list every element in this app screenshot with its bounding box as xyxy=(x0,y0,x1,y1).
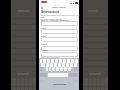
button[interactable] xyxy=(64,67,67,71)
button[interactable] xyxy=(46,63,49,67)
button[interactable] xyxy=(55,59,58,63)
button[interactable] xyxy=(71,59,74,63)
staticText: Phone xyxy=(41,43,47,46)
staticText: Need help signing in? xyxy=(41,56,60,58)
staticText: New Account xyxy=(52,6,67,9)
button[interactable] xyxy=(62,63,65,67)
button[interactable] xyxy=(59,59,62,63)
button[interactable] xyxy=(41,37,78,42)
button[interactable] xyxy=(67,59,70,63)
staticText: Set up your profile to continue and enjo… xyxy=(41,14,81,20)
button[interactable] xyxy=(49,67,51,71)
button[interactable] xyxy=(60,67,63,71)
button[interactable] xyxy=(54,63,57,67)
button[interactable] xyxy=(70,63,73,67)
button[interactable] xyxy=(41,29,78,34)
button[interactable] xyxy=(75,59,78,63)
button[interactable] xyxy=(52,67,55,71)
button[interactable] xyxy=(74,63,77,67)
button[interactable] xyxy=(63,59,66,63)
button[interactable] xyxy=(43,59,46,63)
button[interactable] xyxy=(41,63,45,67)
button[interactable] xyxy=(66,63,69,67)
button[interactable] xyxy=(68,67,71,71)
button[interactable] xyxy=(58,63,61,67)
staticText: Enter all requested information xyxy=(41,19,70,22)
button[interactable] xyxy=(47,59,50,63)
staticText: Name xyxy=(41,27,47,30)
staticText: Address xyxy=(41,49,49,52)
button[interactable] xyxy=(41,52,78,57)
staticText: Email xyxy=(41,35,46,38)
button[interactable] xyxy=(41,46,78,51)
button[interactable] xyxy=(50,63,53,67)
button[interactable] xyxy=(46,67,48,71)
button[interactable] xyxy=(40,59,42,63)
button[interactable] xyxy=(41,21,78,26)
button[interactable] xyxy=(56,67,59,71)
button[interactable] xyxy=(51,59,54,63)
button[interactable]: Back xyxy=(40,6,44,10)
staticText: New account xyxy=(41,10,60,14)
